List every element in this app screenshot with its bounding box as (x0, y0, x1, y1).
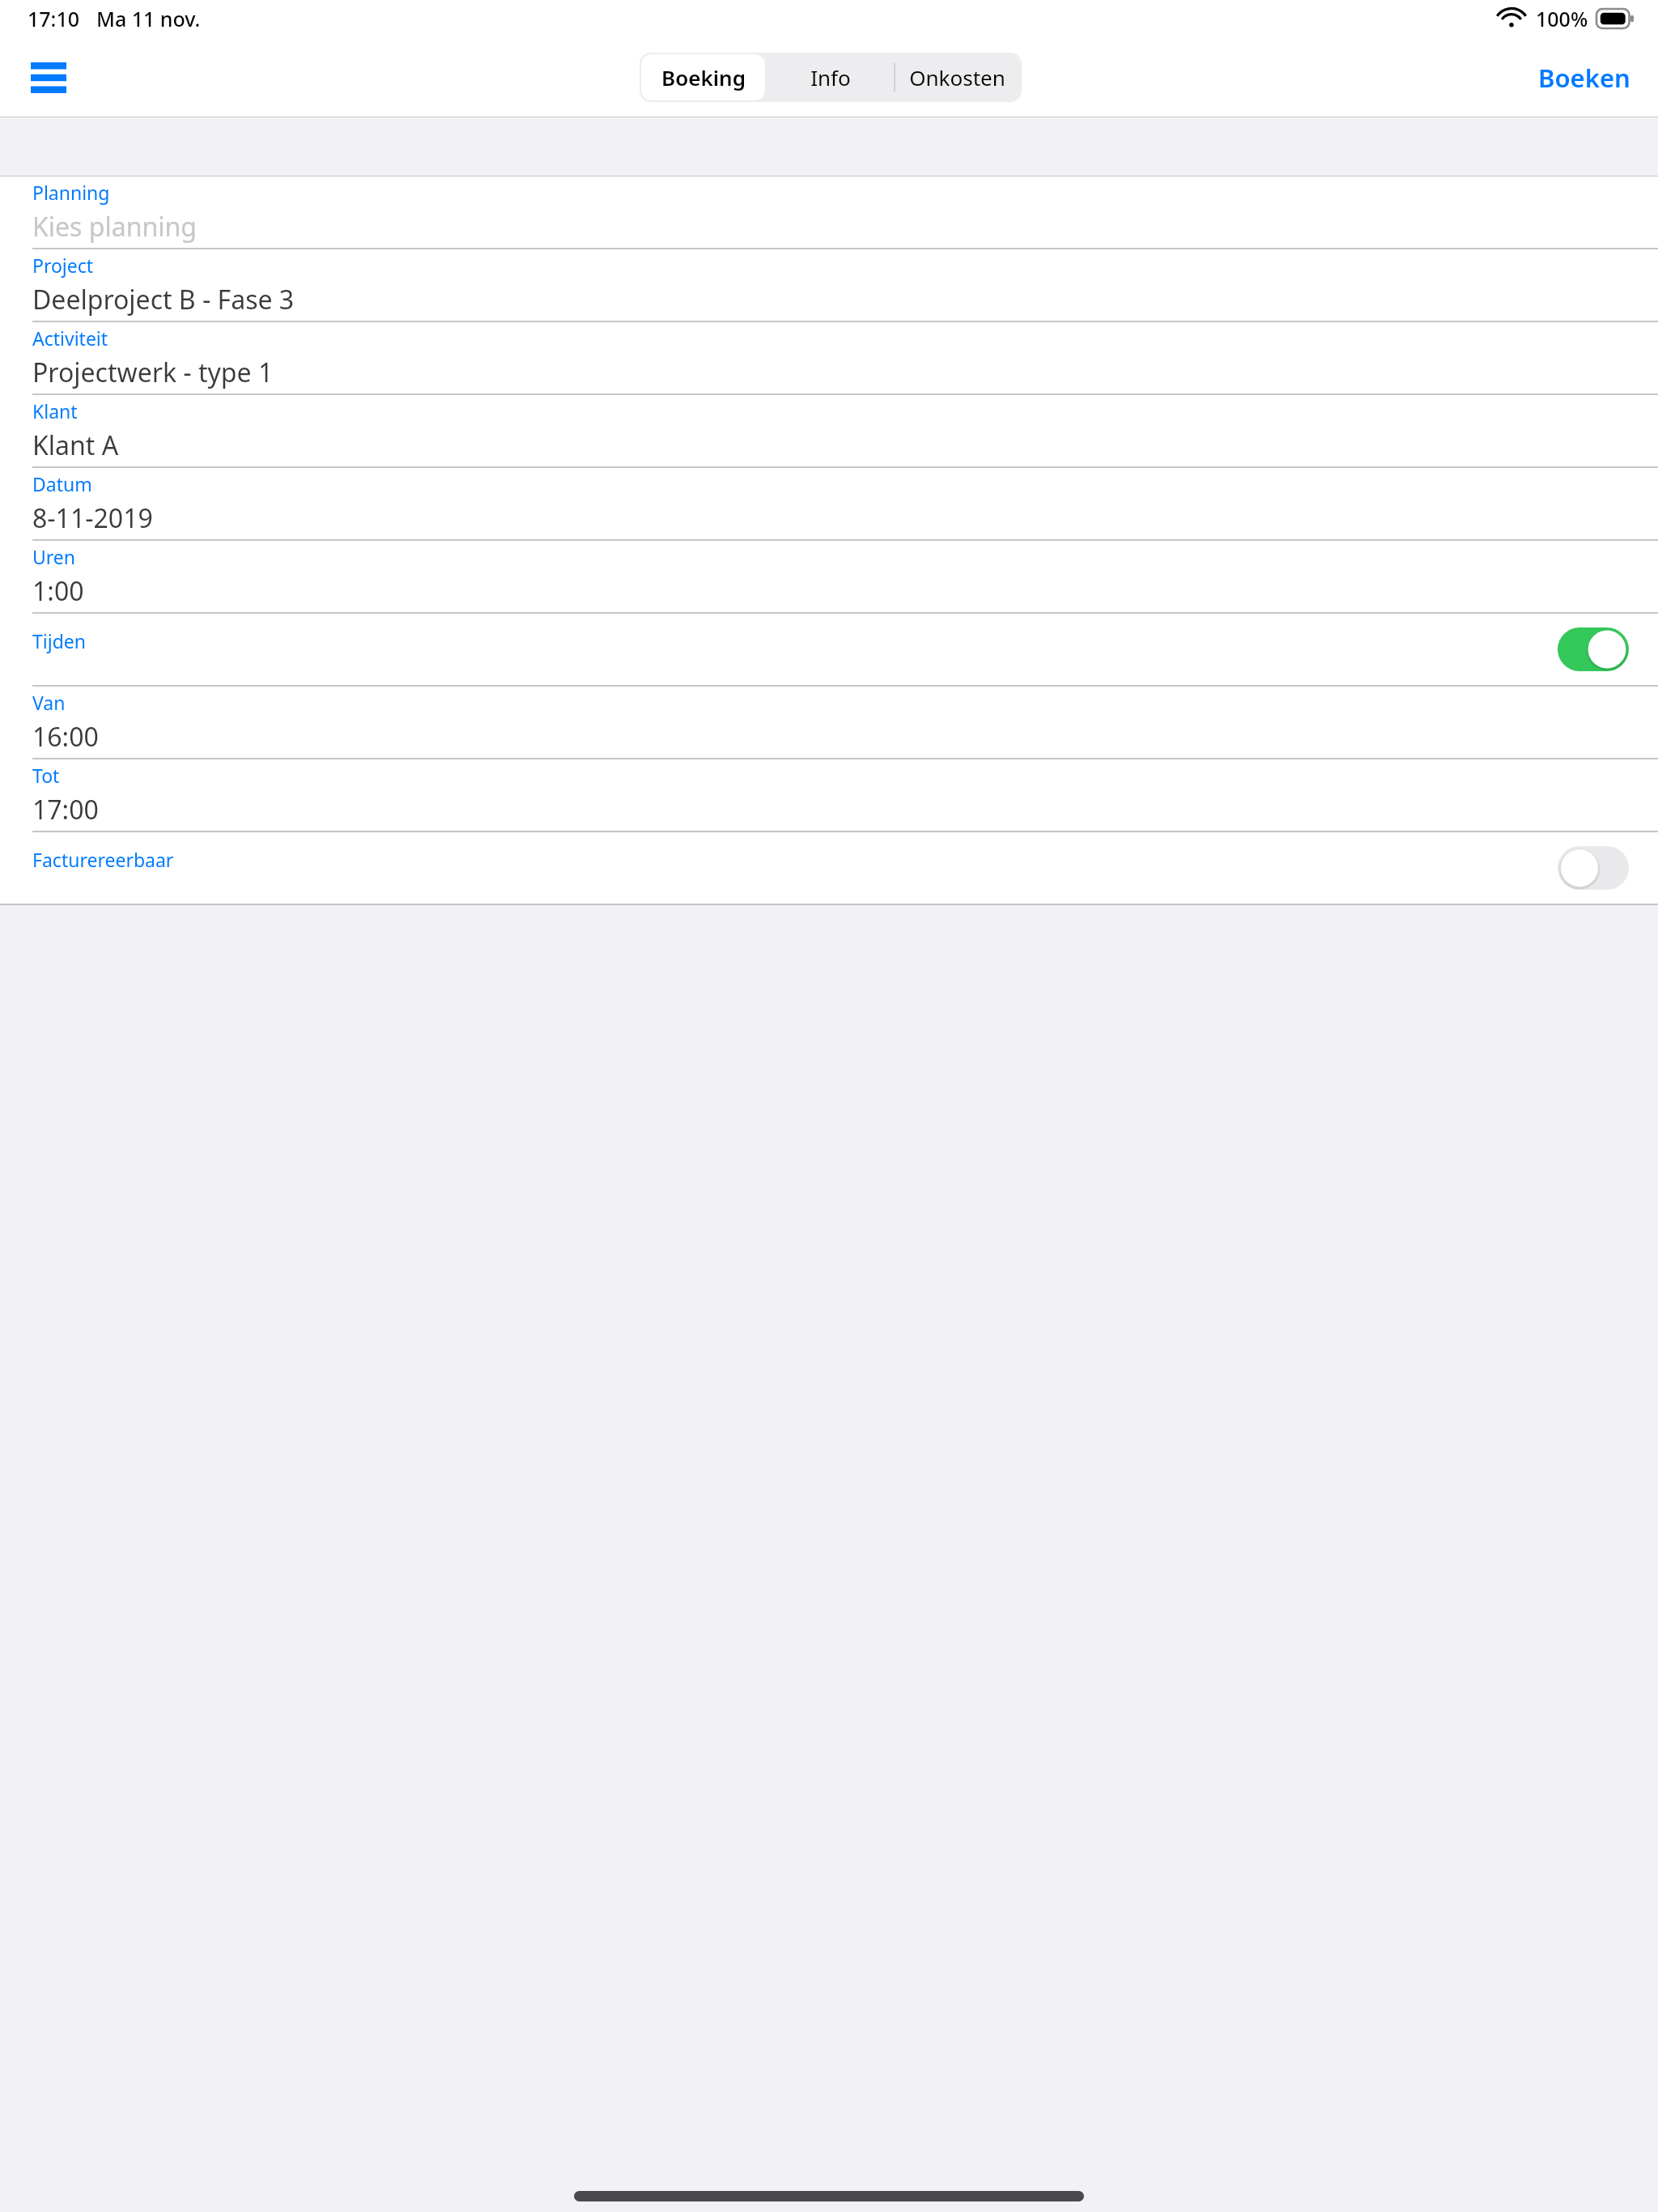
button[interactable]: Uren (0, 541, 1658, 612)
button[interactable]: Project (0, 249, 1658, 321)
button[interactable]: Van (0, 687, 1658, 758)
button[interactable]: Info (767, 53, 894, 102)
button[interactable]: Tijden (0, 614, 1658, 685)
staticText: Project (32, 253, 94, 278)
button[interactable]: Toggle on (1558, 627, 1629, 671)
staticText: Onkosten (909, 63, 1005, 91)
staticText: 8-11-2019 (32, 500, 153, 536)
staticText: Activiteit (32, 325, 108, 351)
button[interactable]: Boeking (640, 53, 767, 102)
staticText: Projectwerk - type 1 (32, 355, 274, 390)
button[interactable]: Boeken (1525, 49, 1643, 106)
button[interactable]: Facturereerbaar (0, 832, 1658, 904)
staticText: Deelproject B - Fase 3 (32, 282, 295, 317)
button[interactable]: Toggle off (1558, 846, 1629, 890)
staticText: Datum (32, 471, 92, 496)
staticText: 17:10 (28, 5, 80, 32)
staticText: 16:00 (32, 719, 99, 755)
button[interactable]: Onkosten (894, 53, 1021, 102)
staticText: 1:00 (32, 573, 84, 609)
staticText: Tot (32, 763, 60, 788)
staticText: Uren (32, 544, 76, 569)
button[interactable]: Klant (0, 395, 1658, 466)
button[interactable]: Planning (0, 177, 1658, 248)
staticText: Boeking (661, 63, 746, 91)
staticText: Tijden (32, 628, 86, 653)
staticText: Kies planning (32, 209, 197, 245)
button[interactable]: Tot (0, 759, 1658, 831)
staticText: Planning (32, 180, 110, 205)
staticText: Boeken (1538, 61, 1630, 95)
staticText: Info (810, 63, 851, 91)
staticText: 17:00 (32, 792, 99, 827)
button[interactable]: Datum (0, 468, 1658, 539)
staticText: Klant (32, 398, 78, 423)
button[interactable]: Activiteit (0, 322, 1658, 393)
staticText: 100% (1536, 5, 1588, 32)
staticText: Facturereerbaar (32, 847, 174, 872)
staticText: Van (32, 690, 66, 715)
staticText: Ma 11 nov. (96, 5, 201, 32)
button[interactable]: Menu (11, 44, 86, 112)
staticText: Klant A (32, 428, 119, 463)
